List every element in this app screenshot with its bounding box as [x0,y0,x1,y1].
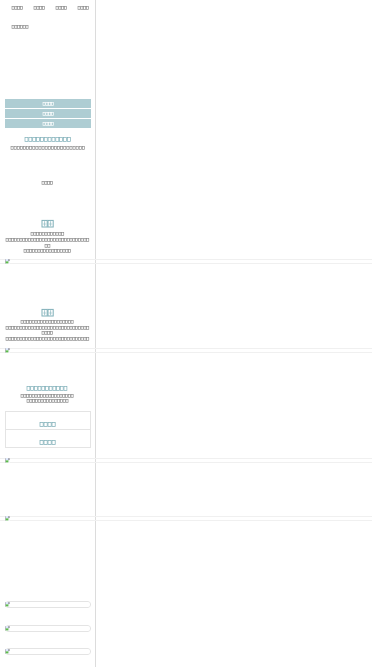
other: Broken image [5,259,10,264]
other: Broken image [5,516,10,521]
other: Broken image [5,602,10,607]
button[interactable] [56,6,67,10]
button[interactable] [5,648,91,655]
button[interactable] [5,99,91,108]
button[interactable] [5,430,91,448]
other: Broken image [5,649,10,654]
button[interactable] [5,109,91,118]
button[interactable] [12,6,23,10]
other: Broken image [5,458,10,463]
button[interactable] [5,119,91,128]
button[interactable] [5,601,91,608]
button[interactable] [5,625,91,632]
button[interactable] [12,25,29,29]
other: Broken image [5,626,10,631]
button[interactable] [78,6,89,10]
button[interactable] [5,411,91,429]
button[interactable] [34,6,45,10]
other: Broken image [5,348,10,353]
